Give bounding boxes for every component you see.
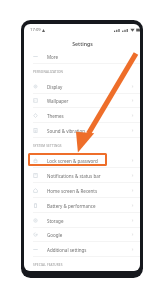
staticText: SPECIAL FEATURES: [33, 263, 63, 267]
button[interactable]: Themes: [24, 108, 140, 123]
button[interactable]: Storage: [24, 213, 140, 228]
staticText: More: [47, 54, 59, 60]
button[interactable]: More: [24, 49, 140, 64]
staticText: Settings: [72, 40, 93, 47]
staticText: Additional settings: [47, 247, 87, 253]
button[interactable]: Wallpaper: [24, 93, 140, 108]
button[interactable]: Sound & vibration: [24, 123, 140, 138]
staticText: Themes: [47, 113, 64, 119]
staticText: Google: [47, 232, 63, 238]
staticText: SYSTEM SETTINGS: [33, 144, 62, 148]
button[interactable]: Home screen & Recents: [24, 183, 140, 198]
staticText: Lock screen & password: [47, 158, 98, 164]
staticText: Wallpaper: [47, 98, 69, 104]
staticText: Display: [47, 84, 63, 90]
staticText: 17:09: [30, 27, 41, 33]
other: Pointer highlighting Lock screen & passw…: [0, 0, 168, 300]
staticText: Battery & performance: [47, 203, 96, 209]
staticText: Notifications & status bar: [47, 173, 101, 179]
button[interactable]: Display: [24, 79, 140, 94]
button[interactable]: Lock screen & password: [24, 153, 140, 168]
staticText: Home screen & Recents: [47, 188, 98, 194]
staticText: Storage: [47, 218, 64, 224]
button[interactable]: Battery & performance: [24, 198, 140, 213]
button[interactable]: Notifications & status bar: [24, 168, 140, 183]
staticText: PERSONALIZATION: [33, 70, 63, 74]
button[interactable]: Google: [24, 227, 140, 242]
staticText: Sound & vibration: [47, 128, 85, 134]
button[interactable]: Additional settings: [24, 242, 140, 257]
